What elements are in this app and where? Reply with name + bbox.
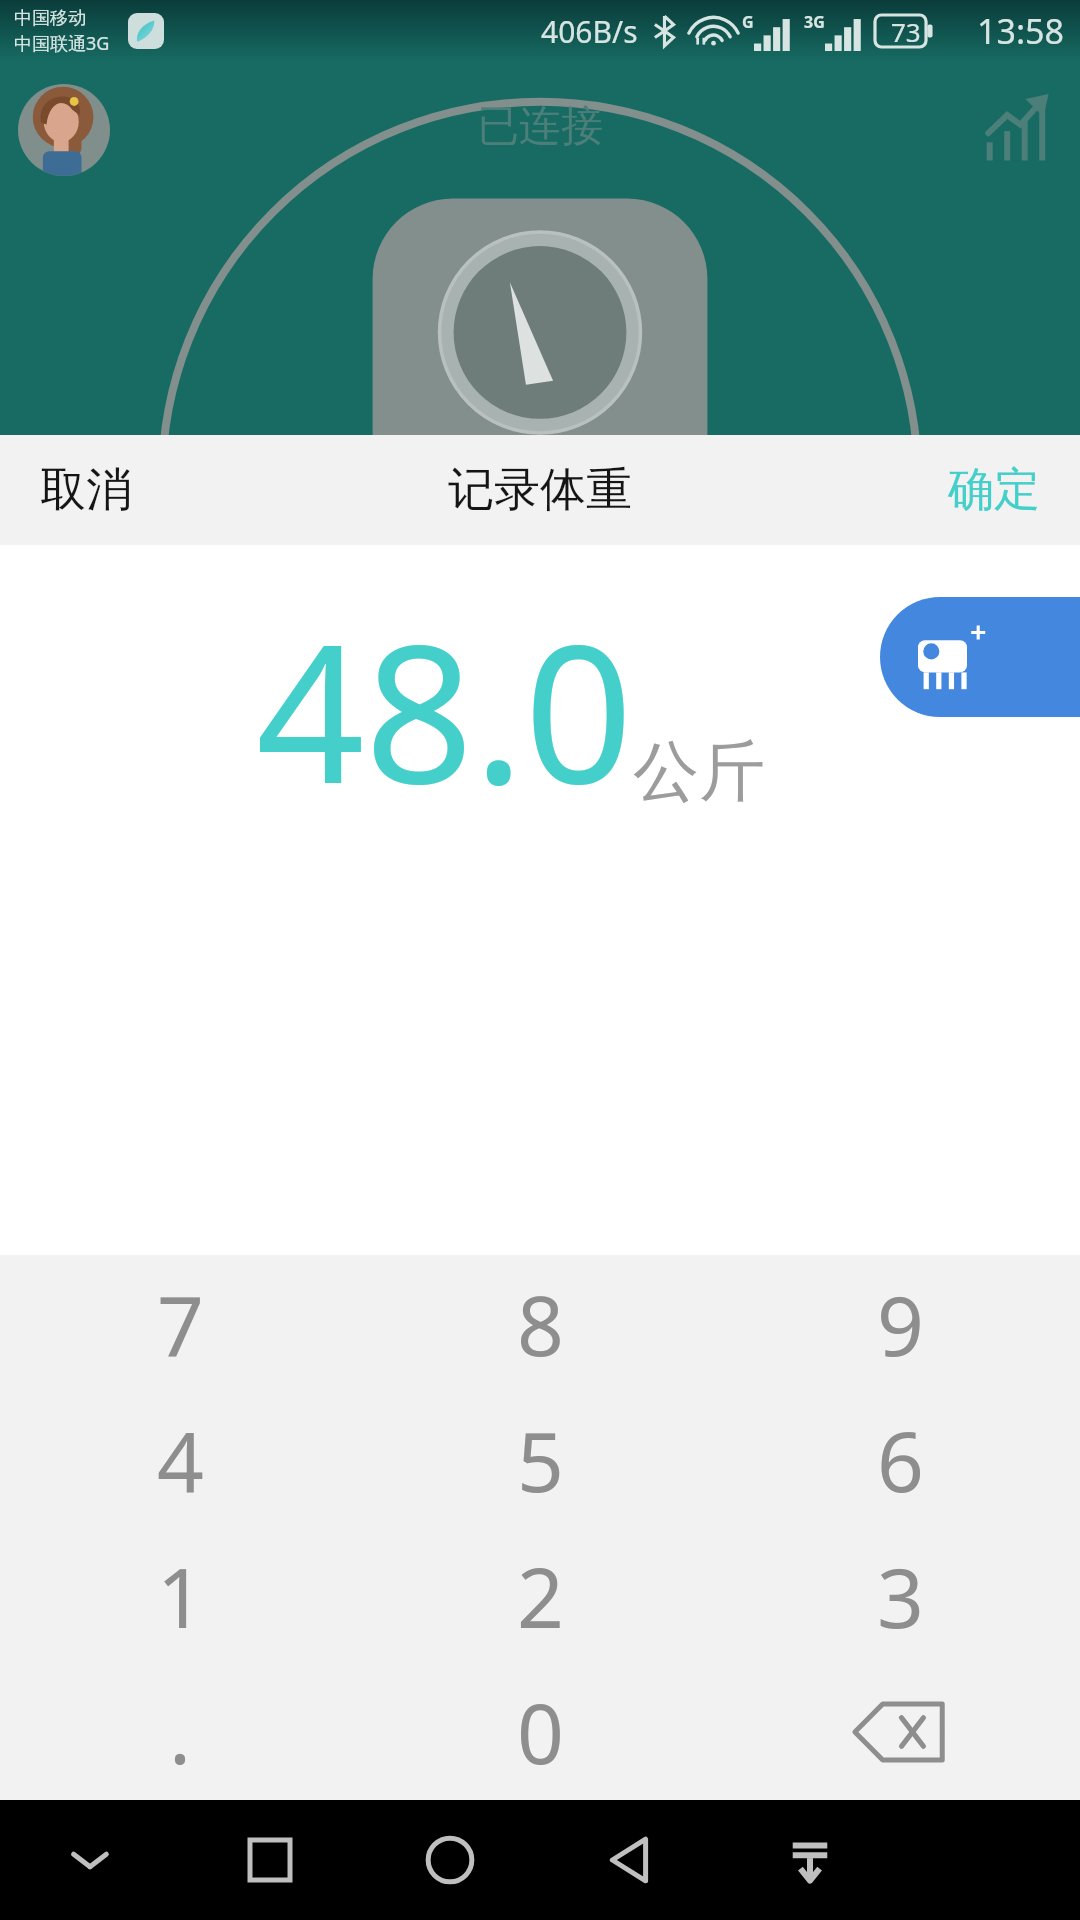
staticText: 确定 <box>948 461 1040 519</box>
button[interactable]: Backspace <box>720 1664 1080 1800</box>
button[interactable]: 7 <box>0 1255 360 1392</box>
staticText: 中国移动 <box>14 7 86 30</box>
button[interactable]: Collapse <box>0 1800 180 1920</box>
button[interactable]: 6 <box>720 1392 1080 1528</box>
button[interactable]: Back <box>540 1800 720 1920</box>
button[interactable]: 8 <box>360 1255 720 1392</box>
button[interactable]: Home <box>360 1800 540 1920</box>
staticText: 5 <box>517 1404 564 1516</box>
button[interactable]: 3 <box>720 1528 1080 1664</box>
staticText: 13:58 <box>977 8 1064 54</box>
button[interactable]: 5 <box>360 1392 720 1528</box>
button[interactable]: 4 <box>0 1392 360 1528</box>
staticText: 7 <box>157 1268 204 1380</box>
staticText: 记录体重 <box>448 461 632 519</box>
staticText: 1 <box>157 1540 204 1652</box>
staticText: 3 <box>877 1540 924 1652</box>
staticText: 4 <box>157 1404 204 1516</box>
staticText: 9 <box>877 1268 924 1380</box>
button[interactable]: Statistics <box>982 94 1052 164</box>
staticText: 中国联通3G <box>14 31 110 56</box>
button[interactable]: Profile <box>18 84 110 176</box>
staticText: 73 <box>891 14 921 49</box>
staticText: G <box>742 11 754 33</box>
staticText: . <box>169 1676 191 1788</box>
button[interactable]: . <box>0 1664 360 1800</box>
button[interactable]: 0 <box>360 1664 720 1800</box>
staticText: 406B/s <box>541 11 638 52</box>
button[interactable]: 1 <box>0 1528 360 1664</box>
staticText: 已连接 <box>477 100 603 153</box>
button[interactable]: Hide keyboard <box>720 1800 900 1920</box>
staticText: 公斤 <box>633 730 765 813</box>
button[interactable]: 取消 <box>0 435 172 545</box>
button[interactable]: 确定 <box>908 435 1080 545</box>
staticText: 2 <box>517 1540 564 1652</box>
button[interactable]: Recents <box>180 1800 360 1920</box>
staticText: 8 <box>517 1268 564 1380</box>
button[interactable]: 9 <box>720 1255 1080 1392</box>
staticText: 6 <box>877 1404 924 1516</box>
staticText: 0 <box>517 1676 564 1788</box>
button[interactable]: Add weight record <box>880 597 1080 717</box>
staticText: 48.0 <box>256 580 633 839</box>
staticText: 取消 <box>40 461 132 519</box>
button[interactable]: 2 <box>360 1528 720 1664</box>
staticText: 3G <box>804 11 825 33</box>
